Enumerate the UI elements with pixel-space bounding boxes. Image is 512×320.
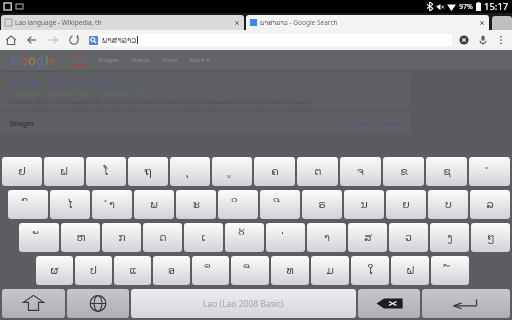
button[interactable]: ໆ <box>471 223 510 252</box>
button[interactable]: ແ <box>114 256 151 285</box>
button[interactable]: ຊ <box>426 157 467 186</box>
button[interactable]: ຫ <box>61 223 100 252</box>
button[interactable]: ອ <box>153 256 190 285</box>
button[interactable]: ຈ <box>340 157 381 186</box>
button[interactable]: ຝ <box>391 256 429 285</box>
button[interactable]: ູ <box>212 157 252 186</box>
button[interactable]: Lao (Lao 2008 Basic) <box>131 289 356 318</box>
button[interactable]: ົ <box>8 190 48 219</box>
button[interactable]: Back <box>26 34 38 46</box>
button[interactable]: ໄ <box>50 190 90 219</box>
staticText: າ <box>324 231 330 244</box>
button[interactable]: Close tab <box>479 20 485 26</box>
button[interactable]: ຳ <box>92 190 132 219</box>
staticText: ກ <box>118 231 126 244</box>
button[interactable]: Close tab <box>234 20 240 26</box>
staticText: ປ <box>90 264 97 277</box>
button[interactable]: More ▾ <box>190 56 210 64</box>
button[interactable]: Report images <box>358 119 400 127</box>
button[interactable]: ໂ <box>86 157 126 186</box>
button[interactable]: ມ <box>311 256 349 285</box>
button[interactable]: ຖ <box>128 157 168 186</box>
button[interactable]: ທ <box>271 256 309 285</box>
button[interactable]: ັ <box>19 223 59 252</box>
button[interactable]: ິ <box>218 190 258 219</box>
button[interactable]: Home <box>5 34 17 46</box>
button[interactable]: ຢ <box>2 157 42 186</box>
button[interactable]: News <box>162 56 178 64</box>
button[interactable]: ພາສາລາວ <box>88 34 452 46</box>
staticText: ພາສາລາວ (ອັງກິດ: Lao language, ຝຣັ່ງ: la… <box>10 98 318 105</box>
staticText: ທ <box>286 264 294 277</box>
button[interactable]: ຍ <box>386 190 426 219</box>
staticText: ຂ <box>400 165 408 178</box>
button[interactable]: Images <box>98 56 119 64</box>
button[interactable]: Shift <box>2 289 65 318</box>
button[interactable]: ຟ <box>44 157 84 186</box>
button[interactable]: ພ <box>134 190 174 219</box>
staticText: ອ <box>168 264 175 277</box>
button[interactable]: Forward <box>47 34 59 46</box>
staticText: ຝ <box>406 264 415 277</box>
button[interactable]: Enter <box>422 289 510 318</box>
button[interactable]: ຕ <box>297 157 338 186</box>
button[interactable]: ໌ <box>431 256 469 285</box>
button[interactable]: More options <box>495 34 507 46</box>
button[interactable]: ຜ <box>36 256 73 285</box>
staticText: ຊ <box>443 165 451 178</box>
button[interactable]: ໃ <box>351 256 389 285</box>
staticText: ໄ <box>67 198 73 211</box>
staticText: e <box>49 51 57 69</box>
button[interactable]: ກ <box>102 223 141 252</box>
button[interactable]: ປ <box>75 256 112 285</box>
button[interactable]: ຂ <box>383 157 424 186</box>
staticText: ບ <box>445 198 452 211</box>
staticText: ແ <box>129 264 137 277</box>
button[interactable]: Change language <box>67 289 129 318</box>
staticText: o <box>20 51 28 69</box>
button[interactable]: Reload <box>68 34 80 46</box>
button[interactable]: Clear <box>458 34 470 46</box>
button[interactable]: ນ <box>344 190 384 219</box>
button[interactable]: ພາສາລາວ - Google Search <box>246 15 489 30</box>
button[interactable]: Web <box>72 54 86 62</box>
staticText: ວ <box>405 231 412 244</box>
button[interactable]: Voice search <box>477 34 489 46</box>
staticText: ພາສາລາວ - Google Search <box>260 18 477 27</box>
button[interactable]: ຸ <box>170 157 210 186</box>
button[interactable]: ວ <box>389 223 428 252</box>
button[interactable]: ບ <box>428 190 468 219</box>
staticText: ດ <box>159 231 167 244</box>
button[interactable]: ື <box>231 256 269 285</box>
staticText: Lao language - Wikipedia, th <box>15 18 232 27</box>
staticText: ຫ <box>76 231 86 244</box>
button[interactable]: ຄ <box>254 157 295 186</box>
staticText: G <box>10 51 20 69</box>
staticText: ຣ <box>318 198 326 211</box>
staticText: ຟ <box>60 165 68 178</box>
button[interactable]: ຣ <box>302 190 342 219</box>
button[interactable]: ງ <box>430 223 469 252</box>
button[interactable]: Videos <box>131 56 150 64</box>
staticText: ຖ <box>144 165 152 178</box>
button[interactable]: າ <box>307 223 346 252</box>
button[interactable]: Lao language - Wikipedia, th <box>1 15 244 30</box>
button[interactable]: Delete <box>358 289 420 318</box>
staticText: ຍ <box>402 198 410 211</box>
button[interactable]: ະ <box>176 190 216 219</box>
staticText: ຳ <box>109 198 115 211</box>
button[interactable]: ິ້ <box>225 223 264 252</box>
button[interactable]: ່ <box>266 223 305 252</box>
button[interactable]: ລ <box>470 190 510 219</box>
staticText: ມ <box>326 264 334 277</box>
button[interactable]: ີ <box>260 190 300 219</box>
button[interactable]: ຶ <box>192 256 229 285</box>
button[interactable]: ເ <box>184 223 223 252</box>
button[interactable]: New tab <box>492 16 512 30</box>
button[interactable]: ສ <box>348 223 387 252</box>
button[interactable]: ພາສາລາວ - ວິກິພີເດຍ - ສາລານຸກົມ <box>10 77 400 105</box>
button[interactable]: ໍ <box>469 157 510 186</box>
staticText: ເ <box>201 231 206 244</box>
staticText: ໂ <box>103 165 109 178</box>
button[interactable]: ດ <box>143 223 182 252</box>
